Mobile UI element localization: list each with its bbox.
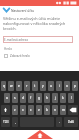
staticText: f [30,96,32,100]
button[interactable]: Další [64,117,78,127]
staticText: n [54,108,56,112]
button[interactable]: E-mailová adresa [3,36,73,43]
staticText: o [66,84,68,88]
staticText: ?123 [3,120,9,124]
staticText: p [74,84,76,88]
staticText: Nastavení účtu [11,8,35,12]
staticText: z [14,108,16,112]
button[interactable]: Zobrazit heslo [3,54,30,58]
staticText: y [42,84,44,88]
staticText: r [26,84,28,88]
staticText: c [30,108,32,112]
staticText: l [71,96,72,100]
button[interactable]: Shift [1,105,10,115]
staticText: d [22,96,24,100]
staticText: h [46,96,48,100]
staticText: s [14,96,16,100]
button[interactable]: Home [27,130,53,139]
button[interactable]: . [56,117,62,127]
staticText: x [22,108,24,112]
button[interactable]: f [28,93,34,103]
button[interactable]: d [20,93,26,103]
button[interactable]: y [40,81,46,91]
staticText: j [55,96,56,100]
staticText: Heslo [4,47,12,51]
staticText: m [62,108,65,112]
button[interactable]: k [60,93,66,103]
button[interactable]: ?123 [1,117,10,127]
staticText: Zobrazit heslo [10,54,30,58]
button[interactable]: , [12,117,18,127]
staticText: Další [68,120,74,124]
staticText: w [10,84,13,88]
button[interactable]: e [16,81,22,91]
button[interactable]: a [4,93,10,103]
button[interactable]: n [52,105,58,115]
staticText: v [38,108,40,112]
button[interactable]: s [12,93,18,103]
button[interactable]: q [1,81,6,91]
button[interactable]: w [8,81,14,91]
button[interactable]: c [28,105,34,115]
staticText: a [6,96,8,100]
staticText: k [62,96,64,100]
staticText: E-mailová adresa [4,38,28,42]
staticText: t [34,84,36,88]
button[interactable]: l [68,93,74,103]
button[interactable]: g [36,93,42,103]
staticText: q [3,84,5,88]
button[interactable]: j [52,93,58,103]
button[interactable]: Logo [2,6,10,14]
button[interactable]: r [24,81,30,91]
button[interactable]: b [44,105,50,115]
staticText: g [38,96,40,100]
staticText: . [59,120,60,124]
button[interactable]: h [44,93,50,103]
staticText: i [59,84,60,88]
button[interactable]: z [12,105,18,115]
staticText: e [18,84,20,88]
button[interactable]: i [56,81,62,91]
staticText: Většinu e-mailových účtů můžete nakonfig… [3,16,70,31]
button[interactable]: p [72,81,78,91]
button[interactable]: o [64,81,70,91]
staticText: u [50,84,52,88]
staticText: , [15,120,16,124]
staticText: b [46,108,48,112]
button[interactable]: Backspace [68,105,78,115]
button[interactable]: x [20,105,26,115]
button[interactable]: t [32,81,38,91]
button[interactable]: v [36,105,42,115]
button[interactable]: Heslo [3,46,73,51]
button[interactable]: m [60,105,66,115]
button[interactable]: u [48,81,54,91]
